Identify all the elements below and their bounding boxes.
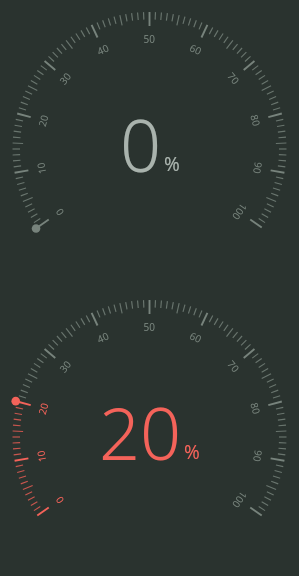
staticText: 0	[120, 95, 162, 193]
button[interactable]: 20 percent	[0, 288, 299, 576]
staticText: %	[184, 439, 200, 465]
staticText: 20	[99, 383, 182, 481]
staticText: %	[164, 151, 180, 177]
button[interactable]: 0 percent	[0, 0, 299, 288]
